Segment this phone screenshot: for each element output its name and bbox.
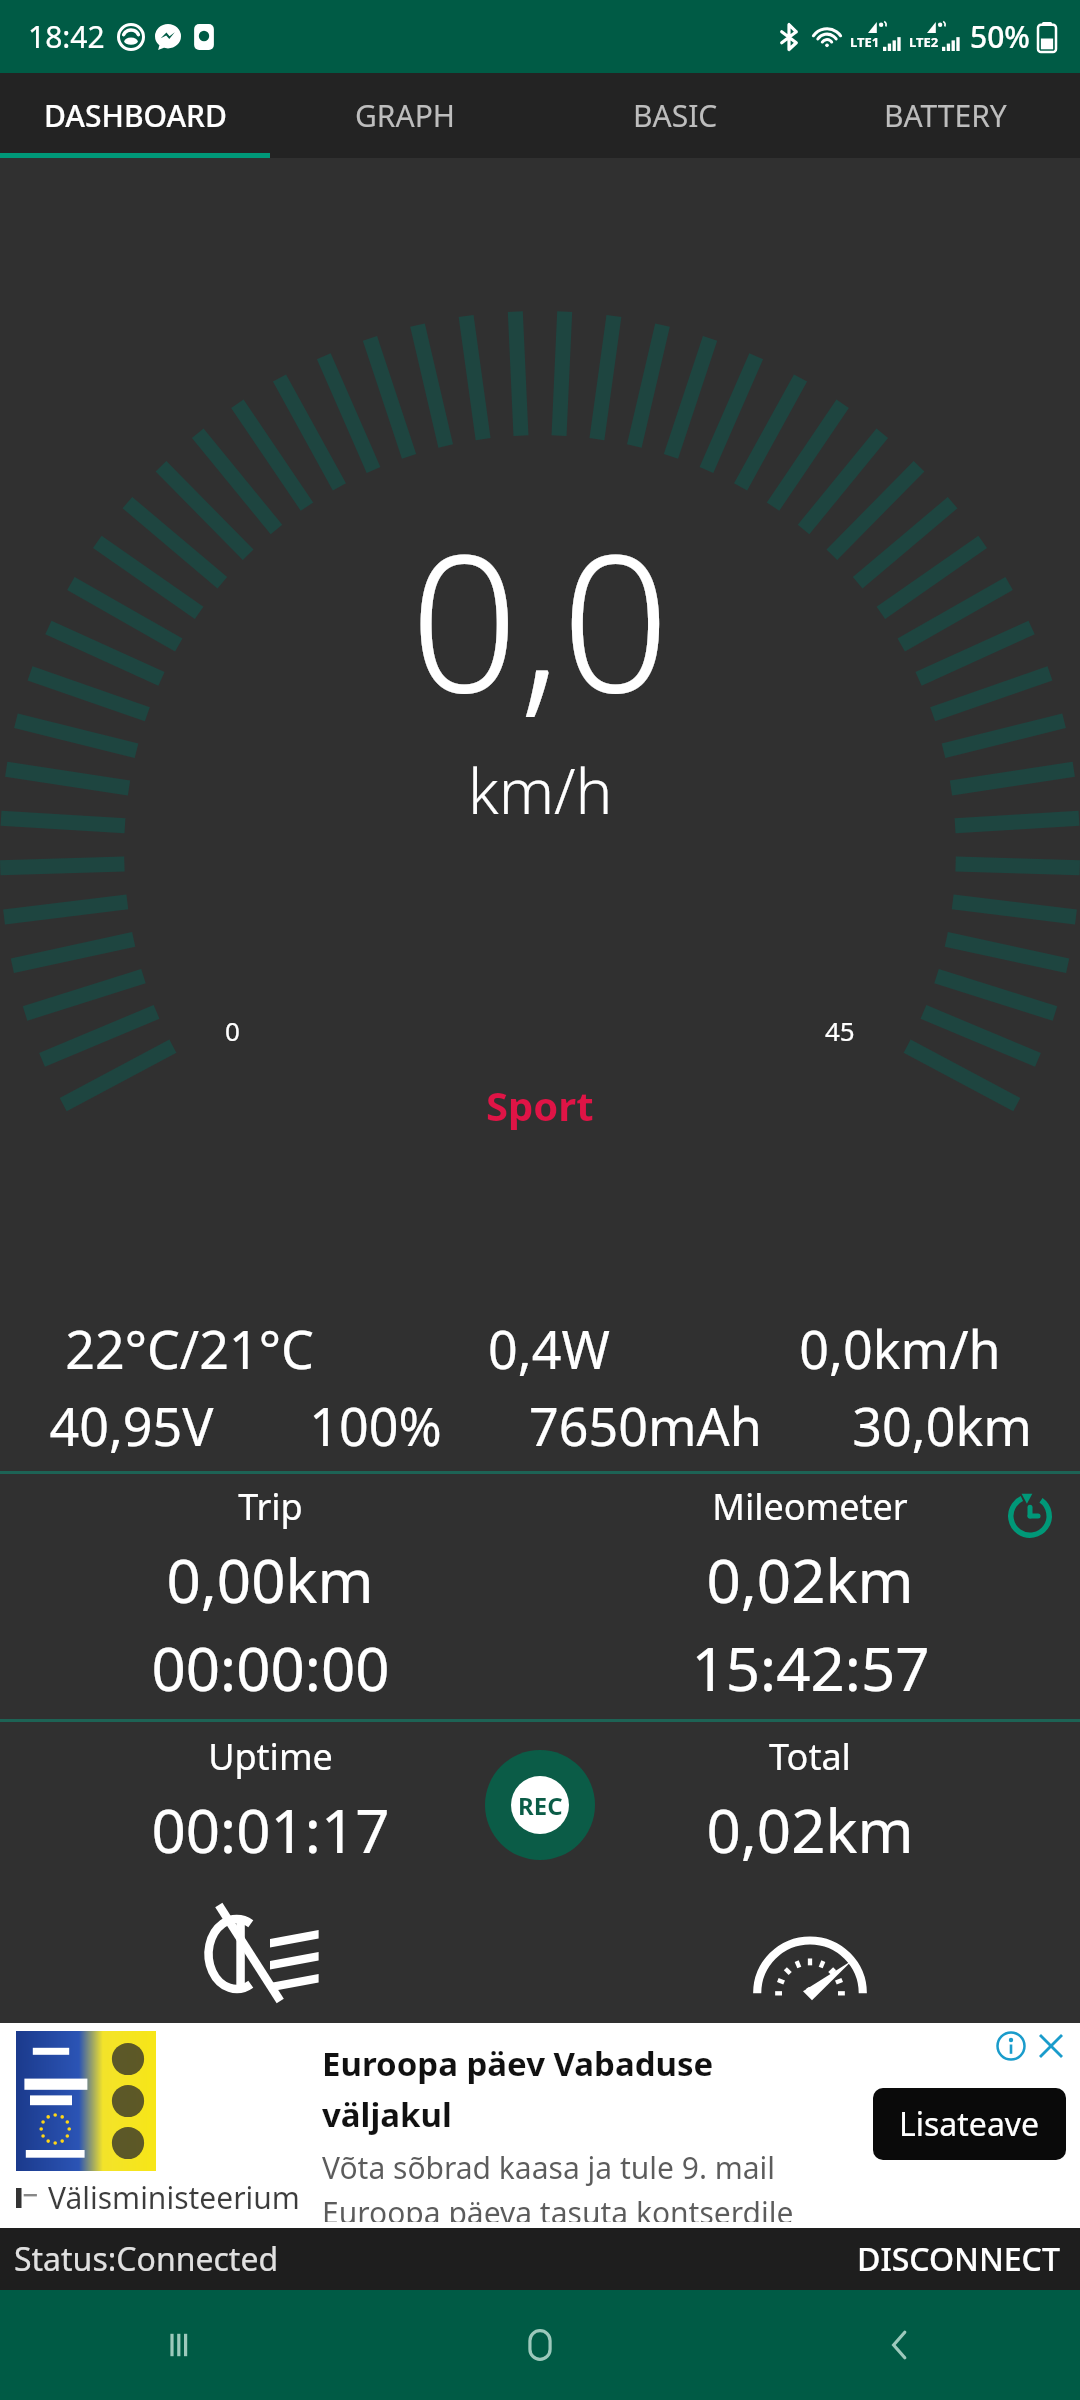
button[interactable]: Speed limit — [735, 1897, 885, 2009]
staticText: DISCONNECT — [857, 2237, 1060, 2281]
staticText: BASIC — [633, 95, 718, 136]
staticText: Sport — [486, 1078, 594, 1132]
staticText: 0 — [225, 1013, 240, 1048]
staticText: 7650mAh — [529, 1390, 762, 1461]
staticText: 0,02km — [706, 1789, 914, 1871]
staticText: DASHBOARD — [44, 95, 227, 136]
button[interactable]: Back — [720, 2290, 1080, 2400]
staticText: väljakul — [322, 2092, 452, 2137]
staticText: 45 — [825, 1013, 855, 1048]
button[interactable]: History — [1002, 1488, 1058, 1544]
button[interactable]: Uptime — [0, 1732, 540, 2009]
staticText: 0,02km — [706, 1539, 914, 1621]
staticText: 100% — [309, 1390, 442, 1461]
staticText: 18:42 — [28, 16, 105, 57]
button[interactable]: Home — [360, 2290, 720, 2400]
staticText: Uptime — [208, 1732, 333, 1781]
button[interactable]: Close ad — [1036, 2031, 1066, 2061]
staticText: 15:42:57 — [691, 1627, 930, 1709]
button[interactable]: Trip — [0, 1482, 540, 1709]
staticText: 0,4W — [488, 1313, 610, 1384]
staticText: Status:Connected — [14, 2237, 279, 2281]
staticText: 00:01:17 — [151, 1789, 390, 1871]
staticText: Total — [769, 1732, 851, 1781]
button[interactable]: Mileometer — [540, 1482, 1080, 1709]
button[interactable]: Recent apps — [0, 2290, 360, 2400]
button[interactable]: GRAPH — [270, 73, 540, 158]
staticText: LTE2 — [909, 33, 939, 51]
staticText: LTE1 — [850, 33, 880, 51]
staticText: Euroopa päev Vabaduse — [322, 2041, 714, 2086]
button[interactable]: Välisministeerium — [0, 2023, 1080, 2228]
staticText: 30,0km — [852, 1390, 1032, 1461]
staticText: GRAPH — [355, 95, 456, 136]
button[interactable]: DISCONNECT — [837, 2228, 1080, 2290]
staticText: km/h — [468, 748, 613, 832]
staticText: 00:00:00 — [151, 1627, 390, 1709]
button[interactable]: Lights off — [195, 1897, 345, 2009]
staticText: 0,0km/h — [799, 1313, 1001, 1384]
button[interactable]: Ad info — [996, 2031, 1026, 2061]
staticText: 50% — [970, 16, 1030, 57]
button[interactable]: BATTERY — [810, 73, 1080, 158]
staticText: Võta sõbrad kaasa ja tule 9. mail — [322, 2147, 776, 2188]
button[interactable]: Record — [485, 1750, 595, 1860]
staticText: Euroopa päeva tasuta kontserdile — [322, 2192, 794, 2222]
staticText: 0,00km — [166, 1539, 374, 1621]
button[interactable]: BASIC — [540, 73, 810, 158]
staticText: Mileometer — [712, 1482, 908, 1531]
staticText: BATTERY — [884, 95, 1007, 136]
button[interactable]: DASHBOARD — [0, 73, 270, 158]
staticText: Lisateave — [899, 2102, 1040, 2146]
staticText: 40,95V — [49, 1390, 214, 1461]
staticText: Välisministeerium — [48, 2177, 300, 2218]
staticText: 0,0 — [410, 489, 670, 748]
staticText: 22°C/21°C — [65, 1313, 314, 1384]
staticText: Trip — [238, 1482, 303, 1531]
button[interactable]: Total — [540, 1732, 1080, 2009]
staticText: REC — [518, 1789, 563, 1822]
button[interactable]: Lisateave — [873, 2088, 1066, 2160]
